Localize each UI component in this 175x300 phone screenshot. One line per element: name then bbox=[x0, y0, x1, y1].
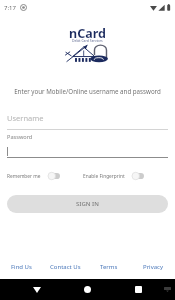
staticText: Terms bbox=[100, 263, 118, 271]
staticText: Password bbox=[7, 133, 33, 141]
staticText: Username bbox=[7, 113, 44, 123]
button[interactable]: Keyboard bbox=[161, 279, 173, 300]
button[interactable]: Remember me bbox=[7, 172, 60, 180]
button[interactable]: Contact Us bbox=[43, 261, 87, 273]
staticText: 7:17 bbox=[4, 4, 16, 12]
button[interactable]: Find Us bbox=[0, 261, 43, 273]
staticText: SIGN IN bbox=[76, 200, 99, 208]
staticText: Privacy bbox=[143, 263, 164, 271]
staticText: nCard bbox=[69, 25, 106, 42]
staticText: Debit Card Services bbox=[72, 38, 103, 43]
staticText: Find Us bbox=[11, 263, 32, 271]
staticText: Enable Fingerprint bbox=[83, 173, 125, 180]
staticText: Contact Us bbox=[50, 263, 81, 271]
staticText: Remember me bbox=[7, 173, 41, 180]
staticText: Enter your Mobile/Online username and pa… bbox=[0, 87, 175, 95]
button[interactable]: Terms bbox=[87, 261, 131, 273]
button[interactable]: Back bbox=[26, 279, 48, 300]
button[interactable]: Home bbox=[77, 279, 98, 300]
button[interactable]: Privacy bbox=[131, 261, 175, 273]
button[interactable]: SIGN IN bbox=[7, 195, 168, 213]
button[interactable]: Enable Fingerprint bbox=[83, 172, 144, 180]
button[interactable]: Recent apps bbox=[127, 279, 149, 300]
